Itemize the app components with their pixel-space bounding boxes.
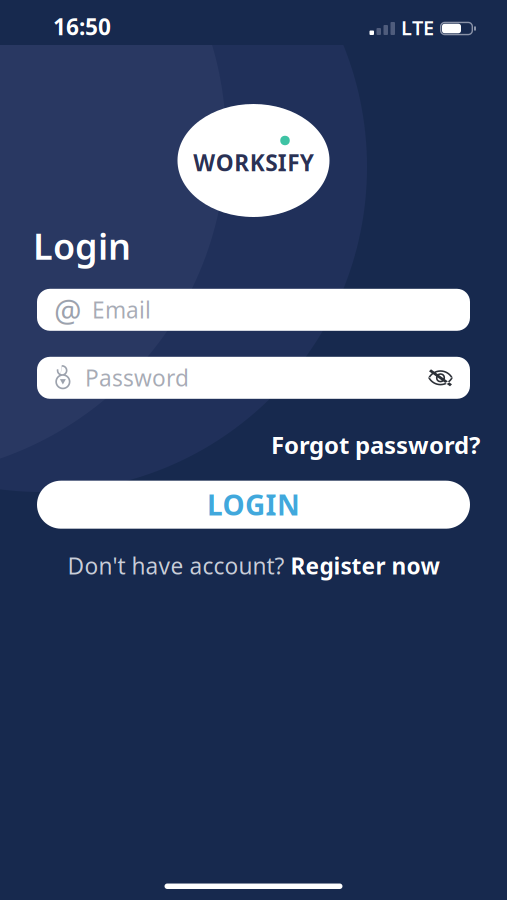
- button[interactable]: Forgot password?: [271, 429, 480, 461]
- button[interactable]: LOGIN: [37, 481, 470, 529]
- staticText: @: [54, 289, 82, 330]
- button[interactable]: Don't have account?: [67, 551, 439, 581]
- staticText: Register now: [290, 551, 439, 581]
- staticText: Login: [33, 222, 131, 270]
- button[interactable]: Show password: [429, 369, 470, 386]
- staticText: Don't have account?: [67, 551, 290, 581]
- staticText: 16:50: [53, 11, 111, 41]
- staticText: LTE: [401, 14, 434, 41]
- staticText: LOGIN: [207, 486, 300, 523]
- staticText: Forgot password?: [271, 429, 480, 461]
- staticText: Password: [85, 363, 189, 393]
- staticText: WORKSIFY: [193, 147, 314, 177]
- staticText: Email: [92, 295, 151, 325]
